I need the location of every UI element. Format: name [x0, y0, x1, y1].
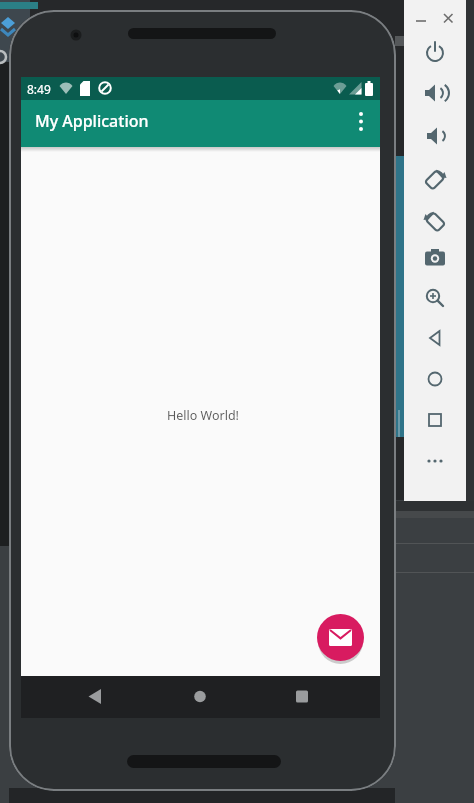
button[interactable] [179, 676, 221, 718]
button[interactable] [424, 41, 446, 63]
button[interactable] [424, 248, 446, 267]
button[interactable] [423, 210, 447, 233]
staticText: Hello World! [167, 407, 239, 424]
button[interactable] [426, 329, 444, 347]
button[interactable] [317, 614, 364, 661]
button[interactable] [413, 12, 429, 28]
button[interactable] [424, 455, 446, 467]
button[interactable] [425, 288, 445, 308]
button[interactable] [423, 168, 447, 191]
button[interactable] [281, 676, 323, 718]
staticText: My Application [35, 110, 149, 132]
button[interactable] [423, 82, 447, 104]
staticText: 8:49 [27, 81, 51, 97]
button[interactable] [426, 370, 444, 388]
button[interactable] [424, 126, 446, 146]
button[interactable] [440, 10, 456, 26]
button[interactable] [74, 676, 116, 718]
button[interactable] [427, 412, 443, 428]
button[interactable] [352, 105, 370, 141]
